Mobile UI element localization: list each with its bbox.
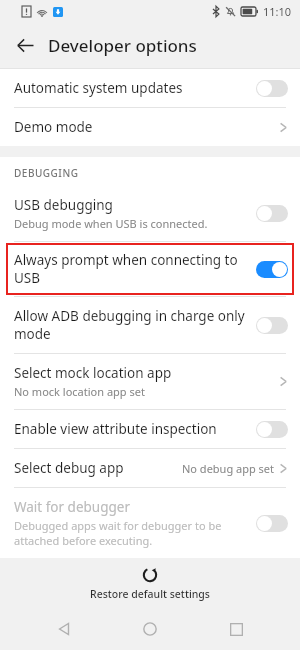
staticText: Select mock location app (14, 364, 172, 382)
staticText: Developer options (48, 34, 197, 57)
staticText: Wait for debugger (14, 498, 130, 516)
staticText: Demo mode (14, 118, 93, 136)
button[interactable]: Back (42, 608, 86, 650)
staticText: Debugged apps wait for debugger to be at… (14, 518, 248, 548)
staticText: USB debugging (14, 196, 113, 214)
staticText: No debug app set (182, 461, 275, 476)
button[interactable]: Back (8, 28, 42, 62)
button[interactable]: Select debug app (0, 449, 300, 487)
button[interactable]: Off (256, 421, 288, 438)
button[interactable]: Select mock location app (0, 354, 300, 409)
button[interactable]: Automatic system updates (0, 69, 300, 107)
button[interactable]: On (256, 261, 288, 278)
button[interactable]: Wait for debugger (0, 488, 300, 558)
button[interactable]: Off (256, 515, 288, 532)
button[interactable]: Always prompt when connecting to USB (6, 243, 294, 295)
staticText: Restore default settings (90, 587, 210, 601)
staticText: No mock location app set (14, 384, 145, 399)
staticText: Allow ADB debugging in charge only mode (14, 307, 248, 343)
staticText: Debug mode when USB is connected. (14, 216, 208, 231)
staticText: Enable view attribute inspection (14, 420, 217, 438)
staticText: Automatic system updates (14, 79, 183, 97)
button[interactable]: Off (256, 317, 288, 334)
button[interactable]: Allow ADB debugging in charge only mode (0, 297, 300, 353)
staticText: Select debug app (14, 459, 124, 477)
button[interactable]: Off (256, 205, 288, 222)
button[interactable]: Enable view attribute inspection (0, 410, 300, 448)
staticText: DEBUGGING (14, 166, 79, 180)
button[interactable]: Restore default settings (0, 558, 300, 608)
button[interactable]: Off (256, 80, 288, 97)
staticText: 11:10 (263, 4, 292, 19)
button[interactable]: Recents (214, 608, 258, 650)
staticText: Always prompt when connecting to USB (14, 251, 256, 287)
button[interactable]: Demo mode (0, 108, 300, 146)
button[interactable]: Home (128, 608, 172, 650)
button[interactable]: USB debugging (0, 186, 300, 241)
